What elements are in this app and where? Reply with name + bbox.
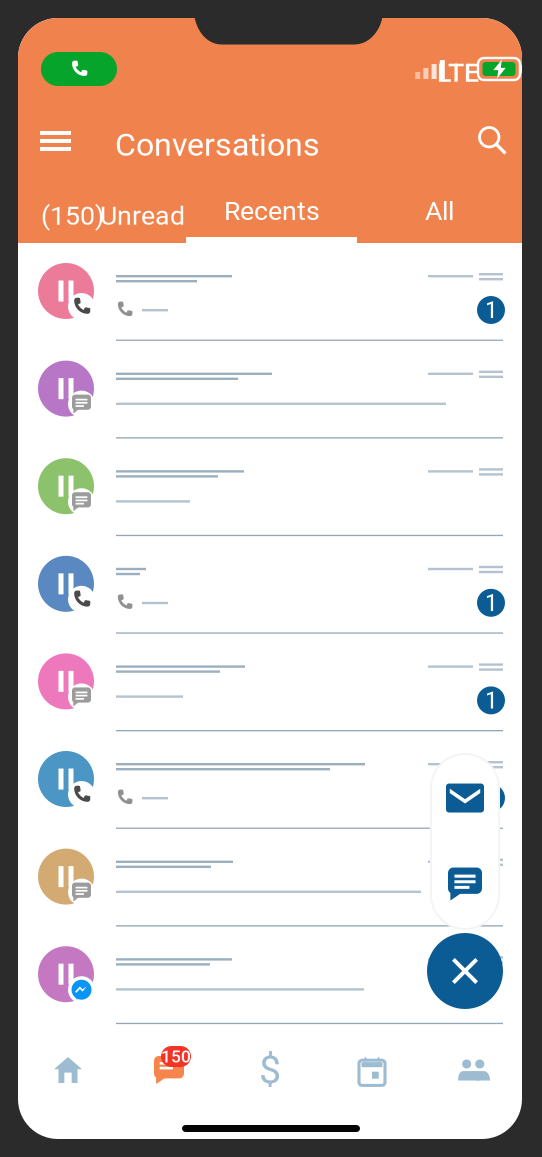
staticText: $ xyxy=(259,1047,281,1093)
button[interactable]: Messages, 150 unread xyxy=(119,1036,219,1104)
button[interactable]: 1 xyxy=(0,0,542,1157)
staticText: 1 xyxy=(484,296,497,324)
button[interactable]: New message xyxy=(432,841,498,927)
staticText: All xyxy=(425,195,454,227)
button[interactable] xyxy=(0,0,542,1157)
staticText: 1 xyxy=(484,589,497,617)
staticText: LTE xyxy=(437,57,479,88)
button[interactable] xyxy=(0,0,542,1157)
button[interactable]: Payments xyxy=(220,1036,320,1104)
staticText: (150) xyxy=(41,200,104,231)
button[interactable]: (150) xyxy=(41,186,209,238)
button[interactable]: Calendar xyxy=(322,1036,422,1104)
button[interactable]: All xyxy=(358,185,521,237)
button[interactable]: 1 xyxy=(0,0,542,1157)
button[interactable]: Close compose menu xyxy=(427,933,503,1009)
staticText: 150 xyxy=(161,1046,191,1067)
button[interactable]: Search xyxy=(466,117,520,165)
button[interactable] xyxy=(0,0,542,1157)
button[interactable]: 1 xyxy=(0,0,542,1157)
staticText: 1 xyxy=(484,686,497,714)
button[interactable]: Contacts xyxy=(424,1036,524,1104)
staticText: Unread xyxy=(100,200,185,231)
button[interactable]: Recents xyxy=(186,185,358,237)
button[interactable] xyxy=(0,0,542,1157)
staticText: Recents xyxy=(224,195,320,227)
button[interactable]: New email xyxy=(432,755,498,841)
button[interactable]: Return to call xyxy=(41,52,117,86)
button[interactable]: Menu xyxy=(26,117,86,165)
button[interactable]: 1 xyxy=(0,0,542,1157)
staticText: Conversations xyxy=(115,126,320,163)
button[interactable]: Home xyxy=(18,1036,118,1104)
